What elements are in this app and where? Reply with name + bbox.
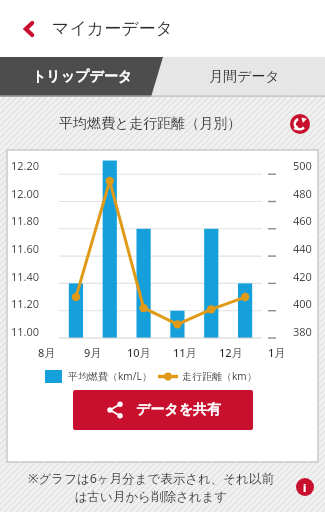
staticText: 440	[293, 241, 312, 255]
staticText: ※グラフは6ヶ月分まで表示され、それ以前 は古い月から削除されます	[28, 470, 274, 504]
staticText: 月間データ	[209, 68, 280, 86]
staticText: 460	[293, 213, 312, 227]
button[interactable]: Refresh	[287, 111, 313, 137]
staticText: 11.40	[11, 269, 40, 283]
staticText: 11.60	[11, 241, 40, 255]
staticText: データを共有	[136, 401, 221, 419]
button[interactable]: Back	[14, 14, 44, 44]
button[interactable]: トリップデータ	[0, 57, 163, 97]
staticText: i	[303, 480, 307, 495]
staticText: 380	[293, 324, 312, 338]
staticText: 走行距離（km）	[182, 369, 257, 383]
button[interactable]: データを共有	[73, 390, 253, 430]
staticText: 10月	[127, 345, 151, 360]
button[interactable]: Information	[293, 475, 317, 499]
staticText: 500	[293, 158, 312, 172]
staticText: 11.20	[11, 296, 40, 310]
staticText: 12.20	[11, 158, 40, 172]
staticText: 400	[293, 296, 312, 310]
staticText: 11.80	[11, 213, 40, 227]
staticText: トリップデータ	[32, 68, 132, 86]
staticText: 12.00	[11, 186, 40, 200]
staticText: 8月	[38, 345, 56, 360]
staticText: 480	[293, 186, 312, 200]
staticText: マイカーデータ	[52, 18, 173, 39]
button[interactable]: 月間データ	[163, 57, 325, 97]
staticText: 平均燃費と走行距離（月別）	[59, 115, 242, 133]
staticText: 9月	[84, 345, 102, 360]
staticText: 1月	[268, 345, 286, 360]
staticText: 420	[293, 269, 312, 283]
staticText: 11月	[173, 345, 197, 360]
staticText: 12月	[219, 345, 243, 360]
staticText: 11.00	[11, 324, 40, 338]
staticText: 平均燃費（km/L）	[68, 369, 152, 383]
